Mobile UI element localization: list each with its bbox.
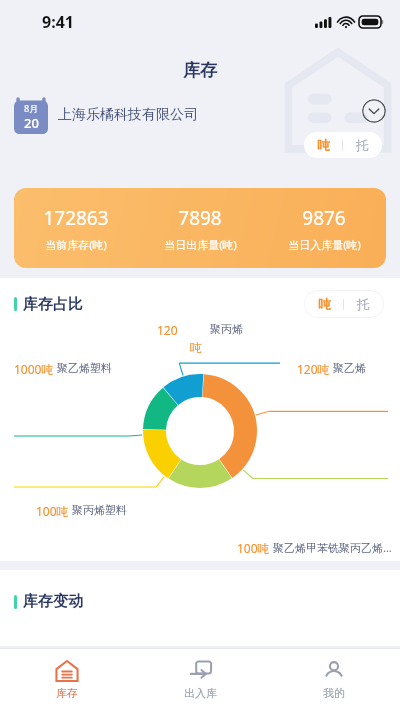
staticText: 8月: [24, 102, 39, 114]
staticText: 当前库存(吨): [45, 237, 107, 252]
button[interactable]: 8月: [14, 96, 198, 134]
button[interactable]: 库存: [0, 649, 134, 710]
button[interactable]: 展开: [362, 99, 386, 123]
staticText: 出入库: [184, 686, 217, 700]
staticText: 120: [157, 322, 178, 338]
staticText: 172863: [43, 205, 109, 231]
staticText: 托: [357, 296, 370, 312]
staticText: 库存变动: [23, 592, 83, 611]
staticText: 1000吨: [14, 361, 54, 377]
staticText: 聚丙烯: [210, 322, 243, 336]
staticText: 聚丙烯塑料: [72, 503, 127, 517]
staticText: 100吨: [237, 540, 270, 556]
staticText: 托: [356, 137, 369, 153]
staticText: 120吨: [297, 361, 330, 377]
staticText: 吨: [318, 296, 331, 312]
staticText: 聚乙烯塑料: [57, 361, 112, 375]
staticText: 聚乙烯: [333, 361, 366, 375]
button[interactable]: 出入库: [134, 649, 267, 710]
staticText: 聚乙烯甲苯铣聚丙乙烯…: [273, 540, 392, 555]
button[interactable]: 我的: [267, 649, 400, 710]
staticText: 吨: [190, 340, 202, 355]
staticText: 20: [24, 114, 39, 132]
staticText: 当日出库量(吨): [164, 237, 237, 252]
staticText: 我的: [323, 686, 345, 700]
staticText: 吨: [317, 137, 330, 153]
staticText: 上海乐橘科技有限公司: [58, 106, 198, 124]
staticText: 库存: [183, 60, 217, 81]
staticText: 9:41: [42, 11, 74, 33]
button[interactable]: 172863: [14, 188, 386, 268]
button[interactable]: 吨: [304, 132, 382, 158]
staticText: 库存占比: [23, 295, 83, 314]
staticText: 100吨: [36, 503, 69, 519]
button[interactable]: 吨: [305, 291, 383, 317]
staticText: 9876: [302, 205, 346, 231]
staticText: 库存: [56, 686, 78, 700]
staticText: 当日入库量(吨): [288, 237, 361, 252]
staticText: 7898: [178, 205, 222, 231]
